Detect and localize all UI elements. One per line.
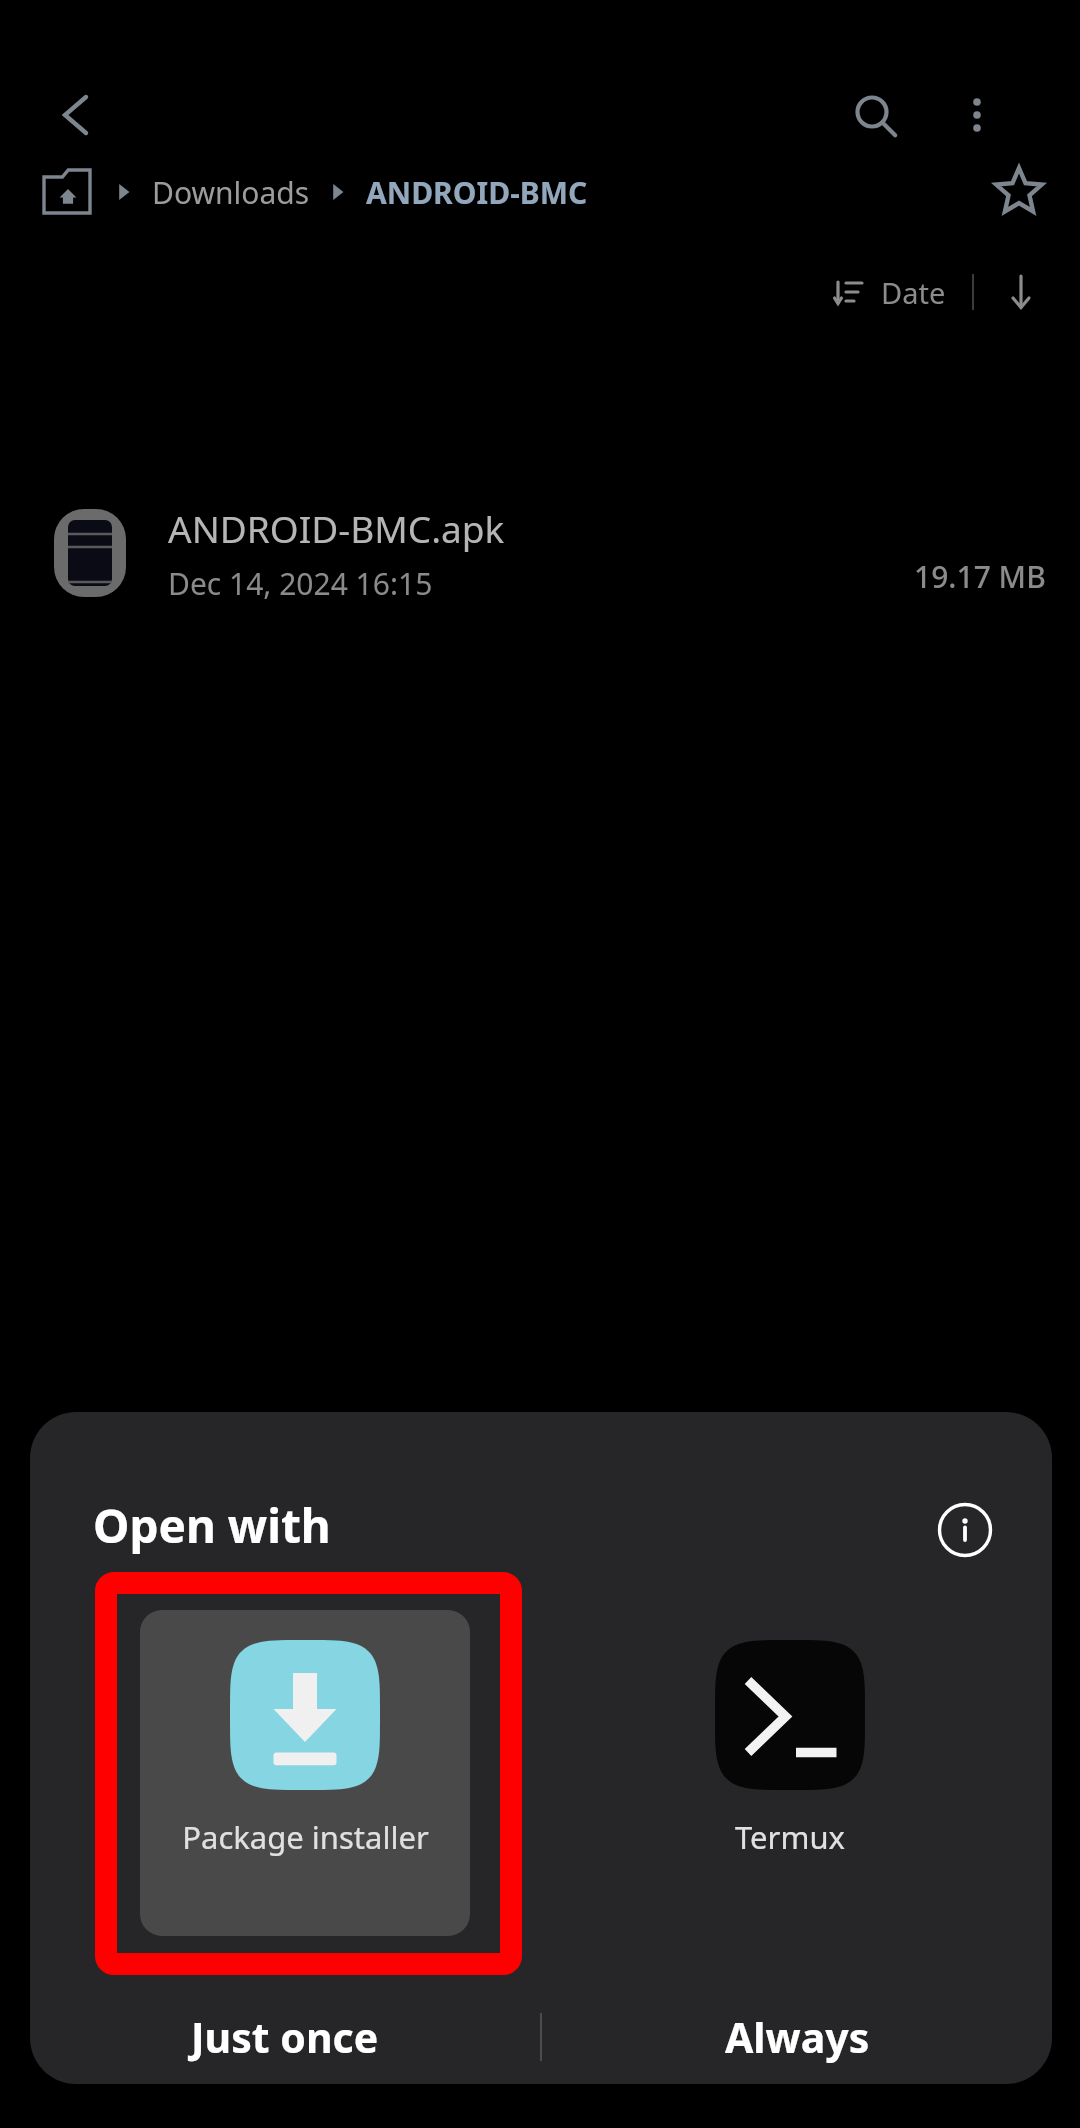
button[interactable]: Sort direction [996, 267, 1046, 317]
staticText: 19.17 MB [914, 556, 1046, 597]
button[interactable]: Termux [625, 1610, 955, 1936]
button[interactable]: More options [940, 78, 1014, 152]
staticText: Open with [93, 1494, 331, 1557]
staticText: Package installer [182, 1816, 429, 1858]
button[interactable]: ANDROID-BMC.apk [0, 488, 1080, 618]
button[interactable]: Date [833, 273, 946, 312]
button[interactable]: Search [837, 78, 911, 152]
button[interactable]: App info [923, 1488, 1007, 1572]
button[interactable]: Add to favourites [988, 161, 1050, 223]
staticText: Termux [735, 1816, 845, 1858]
button[interactable]: Just once [30, 1990, 540, 2084]
staticText: Always [725, 2009, 870, 2065]
staticText: Date [881, 273, 946, 312]
button[interactable]: Package installer [140, 1610, 470, 1936]
button[interactable]: Always [542, 1990, 1052, 2084]
button[interactable]: ANDROID-BMC [366, 172, 588, 213]
staticText: ANDROID-BMC.apk [168, 503, 505, 553]
staticText: Dec 14, 2024 16:15 [168, 563, 433, 604]
button[interactable]: Back [38, 78, 112, 152]
button[interactable]: Home folder [40, 165, 94, 219]
staticText: Just once [191, 2009, 379, 2065]
button[interactable]: Downloads [152, 172, 310, 213]
